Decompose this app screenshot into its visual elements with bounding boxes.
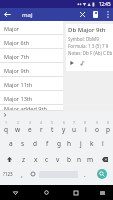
button[interactable]: Search (97, 169, 107, 179)
staticText: v (56, 155, 60, 164)
button[interactable]: a (5, 135, 17, 151)
staticText: b (67, 155, 71, 164)
button[interactable]: 1 (0, 119, 12, 135)
button[interactable]: Major 6th (0, 35, 63, 49)
button[interactable]: k (86, 135, 97, 151)
staticText: w (15, 125, 21, 134)
button[interactable]: . (79, 167, 91, 181)
button[interactable]: Shift (0, 151, 18, 167)
staticText: f (46, 139, 49, 148)
staticText: d (33, 139, 37, 148)
staticText: p (106, 125, 110, 134)
staticText: 6 (63, 120, 66, 125)
button[interactable]: 5 (47, 119, 58, 135)
staticText: y (62, 125, 66, 134)
staticText: Notes: Db F (Ab) C Eb (68, 50, 113, 56)
button[interactable]: , (16, 167, 27, 181)
staticText: maj (22, 11, 33, 19)
staticText: 8 (84, 120, 87, 125)
staticText: e (28, 125, 32, 134)
button[interactable]: Change language (27, 167, 38, 181)
staticText: 0 (107, 120, 110, 125)
staticText: , (21, 170, 23, 179)
staticText: 3 (29, 120, 32, 125)
button[interactable]: Recents (61, 185, 91, 200)
button[interactable]: Major 7th (0, 49, 63, 63)
staticText: Major 9th (4, 67, 30, 74)
button[interactable]: 4 (36, 119, 47, 135)
staticText: Major added 9th (4, 105, 47, 111)
button[interactable]: g (53, 135, 64, 151)
button[interactable]: Hide keyboard (91, 185, 113, 200)
button[interactable]: l (97, 135, 108, 151)
staticText: Symbol: DbM9 (68, 36, 99, 42)
staticText: 7 (73, 120, 76, 125)
button[interactable]: More options (102, 8, 113, 21)
staticText: s (21, 139, 25, 148)
button[interactable]: j (75, 135, 86, 151)
button[interactable]: d (29, 135, 41, 151)
staticText: k (90, 139, 94, 148)
button[interactable]: 7 (69, 119, 80, 135)
staticText: z (22, 155, 26, 164)
staticText: n (77, 155, 82, 164)
staticText: Major 6th (4, 39, 30, 46)
button[interactable]: z (18, 151, 30, 167)
button[interactable]: h (64, 135, 75, 151)
button[interactable]: Major added 9th (0, 105, 63, 111)
staticText: ?123 (3, 171, 13, 177)
button[interactable]: Clear (76, 8, 89, 21)
button[interactable]: b (63, 151, 74, 167)
button[interactable]: Major 13th (0, 91, 63, 105)
button[interactable]: f (41, 135, 53, 151)
staticText: 5 (51, 120, 54, 125)
button[interactable]: Instrument (78, 59, 86, 67)
button[interactable]: 3 (24, 119, 36, 135)
button[interactable]: Back (0, 185, 31, 200)
button[interactable]: s (17, 135, 29, 151)
button[interactable]: Home (31, 185, 61, 200)
button[interactable]: Expand suggestions (0, 111, 9, 119)
button[interactable]: Backspace (96, 151, 113, 167)
staticText: x (34, 155, 38, 164)
button[interactable]: Major 11th (0, 77, 63, 91)
staticText: g (57, 139, 61, 148)
button[interactable]: 6 (58, 119, 69, 135)
button[interactable]: 2 (12, 119, 24, 135)
staticText: r (40, 125, 43, 134)
staticText: 12:45 (99, 1, 111, 7)
staticText: h (67, 139, 72, 148)
staticText: Formula: 1 3 (5) 7 9 (68, 43, 109, 49)
staticText: 1 (5, 120, 8, 125)
staticText: Major 11th (4, 81, 33, 88)
button[interactable]: n (74, 151, 85, 167)
staticText: . (84, 170, 86, 179)
button[interactable]: ?123 (0, 167, 16, 181)
button[interactable]: 8 (80, 119, 91, 135)
button[interactable]: Play chord (68, 59, 76, 67)
staticText: a (9, 139, 13, 148)
button[interactable]: Back (0, 8, 14, 21)
button[interactable]: Voice search (89, 8, 102, 21)
staticText: 2 (17, 120, 20, 125)
staticText: Major 7th (4, 53, 30, 60)
staticText: u (72, 125, 77, 134)
staticText: i (85, 125, 87, 134)
staticText: q (4, 125, 8, 134)
button[interactable]: 9 (91, 119, 102, 135)
staticText: 4 (40, 120, 43, 125)
staticText: Major 13th (4, 95, 33, 102)
staticText: c (45, 155, 49, 164)
staticText: j (80, 139, 82, 148)
staticText: o (95, 125, 99, 134)
button[interactable]: c (41, 151, 52, 167)
button[interactable]: Space (38, 167, 79, 181)
button[interactable]: Major 9th (0, 63, 63, 77)
button[interactable]: m (85, 151, 96, 167)
button[interactable]: Major (0, 21, 63, 35)
staticText: t (51, 125, 54, 134)
staticText: Db Major 9th (68, 26, 106, 34)
button[interactable]: v (52, 151, 63, 167)
button[interactable]: x (30, 151, 41, 167)
button[interactable]: 0 (102, 119, 113, 135)
